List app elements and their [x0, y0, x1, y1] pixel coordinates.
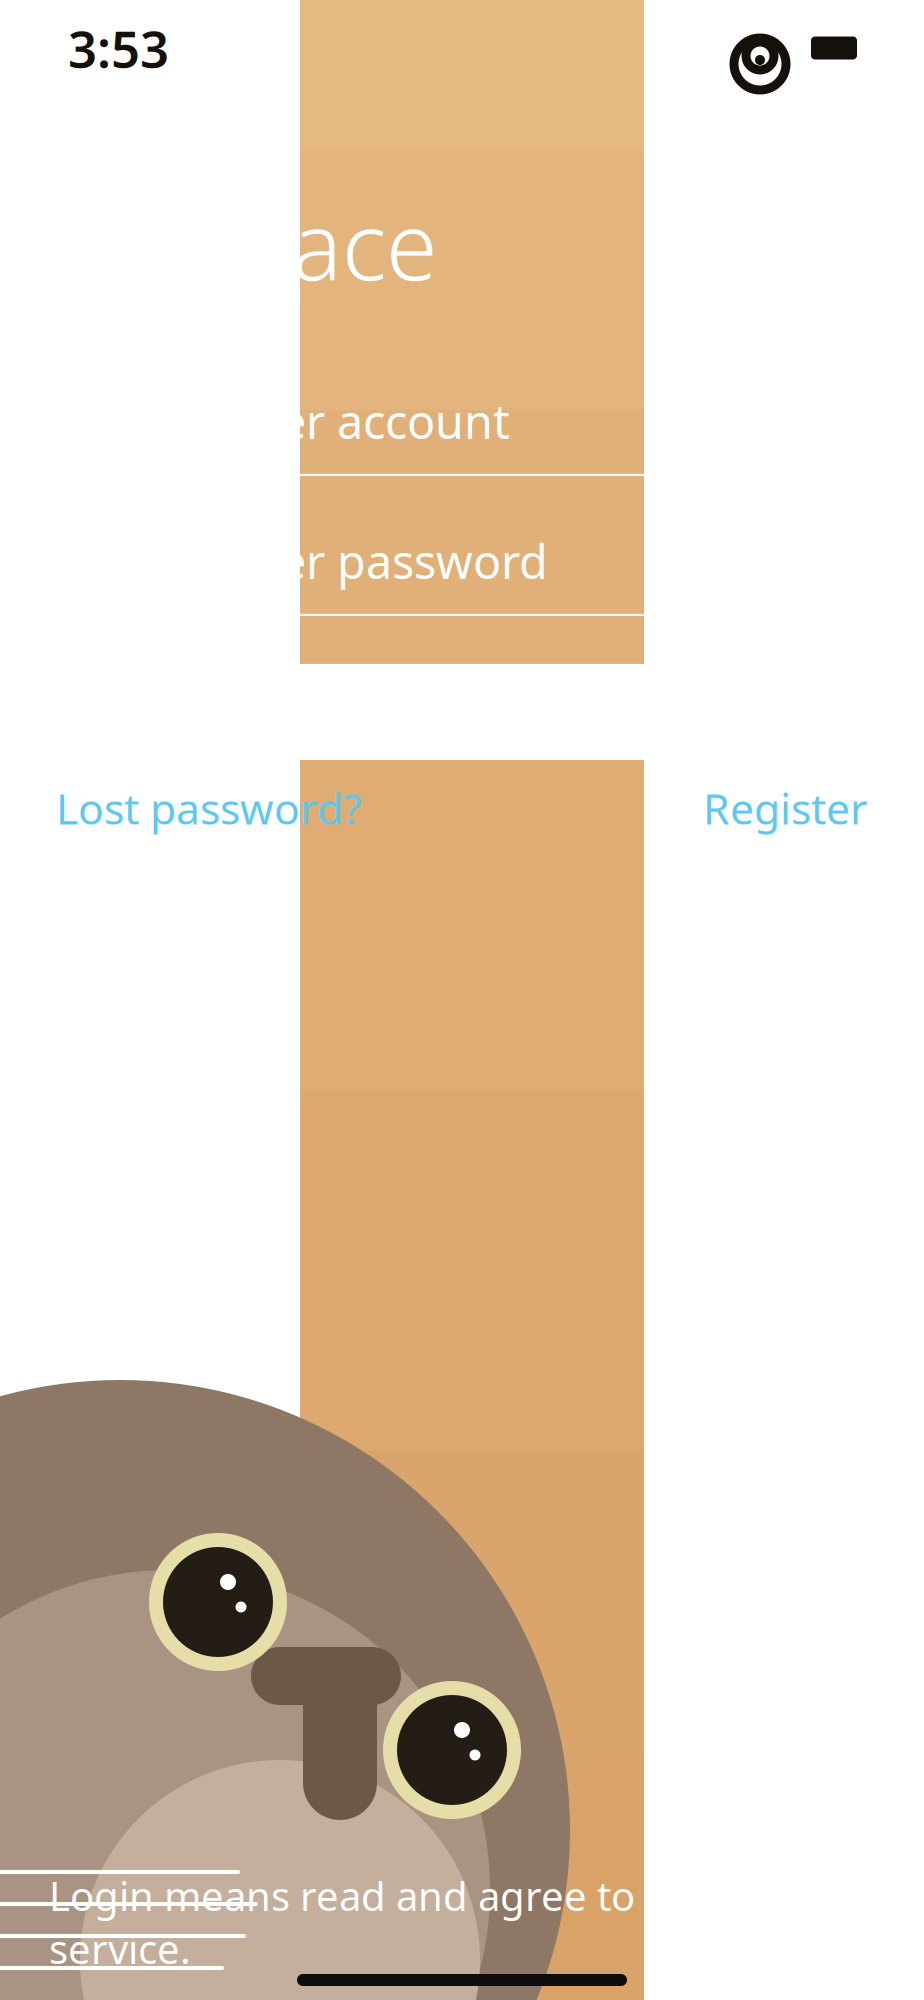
- button[interactable]: Please enter password: [56, 534, 868, 616]
- staticText: Please enter account: [56, 390, 510, 452]
- button[interactable]: Login means read and agree to the terms …: [0, 1900, 924, 1944]
- button[interactable]: Register: [703, 780, 868, 836]
- staticText: Register: [703, 780, 868, 836]
- staticText: Please enter password: [56, 530, 548, 592]
- button[interactable]: Lost password?: [56, 780, 362, 836]
- button[interactable]: Please enter account: [56, 394, 868, 476]
- staticText: YouTrace: [56, 182, 438, 306]
- staticText: Login means read and agree to the terms …: [49, 1869, 875, 1975]
- staticText: Lost password?: [56, 780, 362, 836]
- staticText: 3:53: [68, 14, 169, 82]
